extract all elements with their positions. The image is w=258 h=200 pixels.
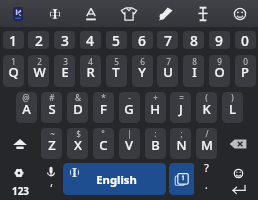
staticText: ? <box>204 161 209 175</box>
button[interactable]: A <box>16 92 37 123</box>
button[interactable]: Themes <box>116 0 142 27</box>
staticText: 7 <box>166 56 171 67</box>
button[interactable]: Q <box>3 55 24 87</box>
button[interactable]: 2 <box>28 31 49 49</box>
staticText: 9 <box>215 31 223 49</box>
staticText: 0 <box>241 31 249 49</box>
staticText: U <box>163 63 173 81</box>
button[interactable]: Move cursor <box>190 0 216 27</box>
button[interactable]: Brush <box>153 0 179 27</box>
staticText: 8 <box>192 56 197 67</box>
button[interactable]: Shift <box>2 128 38 159</box>
button[interactable]: 1 <box>3 31 24 49</box>
staticText: J <box>179 100 183 118</box>
staticText: ~ <box>50 128 55 139</box>
staticText: 6 <box>140 56 145 67</box>
button[interactable]: 4 <box>80 31 101 49</box>
staticText: * <box>101 92 106 103</box>
staticText: @ <box>22 92 30 103</box>
staticText: 0 <box>243 56 248 67</box>
staticText: / <box>205 128 209 139</box>
button[interactable]: Settings <box>6 163 32 195</box>
button[interactable]: P <box>235 55 256 87</box>
button[interactable]: N <box>170 128 191 159</box>
staticText: - <box>128 92 131 103</box>
staticText: 2 <box>35 31 43 49</box>
button[interactable]: K <box>196 92 217 123</box>
button[interactable]: Backspace <box>221 128 255 159</box>
staticText: 123 <box>12 184 29 197</box>
staticText: L <box>229 100 236 118</box>
button[interactable]: W <box>28 55 49 87</box>
button[interactable]: S <box>41 92 62 123</box>
button[interactable]: L <box>222 92 243 123</box>
button[interactable]: Y <box>132 55 153 87</box>
button[interactable]: 6 <box>132 31 153 49</box>
staticText: 3 <box>63 56 68 67</box>
staticText: W <box>33 63 46 81</box>
button[interactable]: Z <box>41 128 62 159</box>
staticText: 4 <box>88 56 93 67</box>
staticText: ° <box>101 128 105 139</box>
button[interactable]: B <box>145 128 166 159</box>
staticText: N <box>176 136 187 154</box>
staticText: T <box>112 63 120 81</box>
staticText: K <box>202 100 211 118</box>
staticText: G <box>124 100 134 118</box>
button[interactable]: F <box>93 92 114 123</box>
button[interactable]: Emoji <box>227 0 253 27</box>
staticText: 8 <box>190 31 198 49</box>
staticText: F <box>100 100 107 118</box>
staticText: English <box>96 172 137 187</box>
button[interactable]: T <box>106 55 127 87</box>
button[interactable]: H <box>145 92 166 123</box>
staticText: Z <box>48 136 56 154</box>
staticText: 6 <box>138 31 146 49</box>
button[interactable]: I <box>183 55 204 87</box>
button[interactable]: M <box>196 128 217 159</box>
staticText: 1 <box>9 31 17 49</box>
staticText: P <box>241 63 249 81</box>
staticText: I <box>192 63 197 81</box>
staticText: V <box>125 136 133 154</box>
staticText: 4 <box>86 31 94 49</box>
button[interactable]: Languages <box>42 0 68 27</box>
button[interactable]: Voice input <box>38 163 64 195</box>
button[interactable]: Switch layout <box>169 163 195 195</box>
button[interactable]: Question mark and period <box>194 163 219 195</box>
button[interactable]: 9 <box>209 31 230 49</box>
button[interactable]: V <box>119 128 140 159</box>
staticText: R <box>86 63 95 81</box>
button[interactable]: Enter <box>225 163 253 195</box>
staticText: 7 <box>164 31 172 49</box>
button[interactable]: E <box>54 55 75 87</box>
button[interactable]: C <box>93 128 114 159</box>
staticText: B <box>151 136 160 154</box>
button[interactable]: D <box>67 92 88 123</box>
button[interactable]: 0 <box>235 31 256 49</box>
staticText: E <box>61 63 69 81</box>
button[interactable]: O <box>209 55 230 87</box>
button[interactable]: Space English <box>63 163 166 195</box>
button[interactable]: X <box>67 128 88 159</box>
staticText: 5 <box>114 56 119 67</box>
staticText: Y <box>138 63 146 81</box>
button[interactable]: R <box>80 55 101 87</box>
button[interactable]: U <box>157 55 178 87</box>
button[interactable]: J <box>170 92 191 123</box>
button[interactable]: App <box>5 0 31 27</box>
button[interactable]: 8 <box>183 31 204 49</box>
staticText: # <box>49 92 55 103</box>
staticText: 1 <box>11 56 16 67</box>
button[interactable]: 3 <box>54 31 75 49</box>
button[interactable]: 5 <box>106 31 127 49</box>
staticText: 3 <box>61 31 69 49</box>
staticText: 5 <box>112 31 120 49</box>
button[interactable]: Text style <box>78 0 104 27</box>
button[interactable]: 7 <box>157 31 178 49</box>
staticText: = <box>179 92 184 103</box>
staticText: H <box>150 100 160 118</box>
staticText: Q <box>8 63 19 81</box>
button[interactable]: G <box>119 92 140 123</box>
staticText: | <box>127 128 132 139</box>
